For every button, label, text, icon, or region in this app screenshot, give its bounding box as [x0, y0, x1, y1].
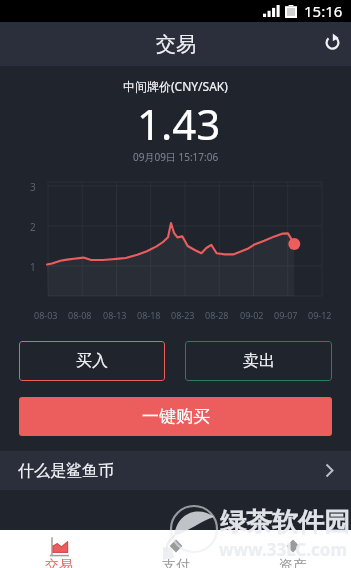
staticText: 09月09日 15:17:06: [133, 150, 219, 164]
button[interactable]: 资产: [234, 530, 351, 568]
staticText: 08-13: [103, 309, 127, 321]
staticText: 08-08: [68, 309, 92, 321]
staticText: 15:16: [304, 1, 343, 21]
staticText: 08-03: [34, 309, 58, 321]
staticText: 3: [30, 180, 36, 194]
staticText: 09-07: [274, 309, 298, 321]
button[interactable]: 买入: [19, 341, 165, 381]
staticText: 一键购买: [142, 406, 210, 427]
button[interactable]: 交易: [0, 530, 117, 568]
button[interactable]: 支付: [117, 530, 234, 568]
staticText: 2: [30, 220, 36, 234]
staticText: 什么是鲨鱼币: [18, 461, 114, 481]
staticText: 1: [30, 260, 36, 274]
staticText: 资产: [279, 557, 307, 568]
staticText: 09-12: [308, 309, 332, 321]
staticText: 1.43: [137, 95, 221, 152]
staticText: 09-02: [240, 309, 264, 321]
staticText: 绿茶软件园: [220, 506, 350, 539]
staticText: 中间牌价(CNY/SAK): [123, 78, 228, 94]
button[interactable]: Refresh: [313, 22, 351, 60]
staticText: 交易: [45, 557, 73, 568]
staticText: 08-18: [137, 309, 161, 321]
button[interactable]: 什么是鲨鱼币: [0, 451, 351, 490]
staticText: 买入: [76, 351, 108, 371]
staticText: www.33LC.com: [219, 538, 348, 561]
staticText: 08-23: [171, 309, 195, 321]
staticText: 卖出: [243, 351, 275, 371]
staticText: 支付: [162, 557, 190, 568]
staticText: 交易: [156, 32, 196, 57]
button[interactable]: 卖出: [185, 341, 332, 381]
button[interactable]: 一键购买: [19, 397, 332, 436]
staticText: 08-28: [205, 309, 229, 321]
